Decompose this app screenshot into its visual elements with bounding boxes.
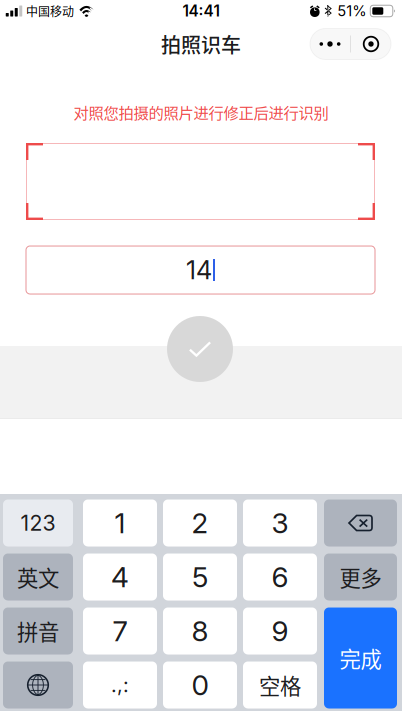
button[interactable]: 8 bbox=[163, 607, 237, 654]
staticText: 更多 bbox=[339, 562, 381, 592]
button[interactable]: 0 bbox=[163, 661, 237, 708]
staticText: 14:41 bbox=[182, 2, 219, 20]
staticText: 51% bbox=[337, 2, 366, 20]
staticText: 拍照识车 bbox=[161, 29, 241, 58]
button[interactable]: 6 bbox=[243, 553, 317, 600]
staticText: 对照您拍摄的照片进行修正后进行识别 bbox=[73, 101, 328, 123]
button[interactable]: 更多 bbox=[324, 553, 397, 600]
button[interactable]: Switch keyboard bbox=[3, 661, 73, 708]
staticText: 空格 bbox=[259, 670, 301, 700]
staticText: 5 bbox=[192, 560, 208, 594]
button[interactable]: Confirm bbox=[167, 316, 233, 382]
button[interactable]: 拼音 bbox=[3, 607, 73, 654]
button[interactable]: 5 bbox=[163, 553, 237, 600]
button[interactable]: 3 bbox=[243, 499, 317, 546]
button[interactable]: .,: bbox=[83, 661, 157, 708]
button[interactable]: 7 bbox=[83, 607, 157, 654]
button[interactable]: Close bbox=[351, 28, 391, 59]
staticText: 拼音 bbox=[17, 616, 59, 646]
staticText: 6 bbox=[271, 560, 288, 594]
staticText: 14 bbox=[186, 255, 212, 285]
button[interactable]: 空格 bbox=[243, 661, 317, 708]
button[interactable]: 4 bbox=[83, 553, 157, 600]
button[interactable]: 2 bbox=[163, 499, 237, 546]
button[interactable]: 1 bbox=[83, 499, 157, 546]
staticText: 4 bbox=[111, 560, 129, 594]
staticText: 123 bbox=[20, 510, 55, 536]
button[interactable]: 完成 bbox=[324, 607, 397, 708]
button[interactable]: 9 bbox=[243, 607, 317, 654]
staticText: 英文 bbox=[17, 562, 59, 592]
staticText: 7 bbox=[112, 614, 127, 648]
staticText: 9 bbox=[271, 614, 288, 648]
staticText: 2 bbox=[191, 506, 208, 540]
staticText: 8 bbox=[191, 614, 208, 648]
staticText: 完成 bbox=[339, 643, 381, 673]
staticText: 0 bbox=[191, 668, 208, 702]
button[interactable]: More bbox=[310, 28, 350, 59]
button[interactable]: Plate number field bbox=[26, 246, 375, 294]
button[interactable]: 123 bbox=[3, 499, 73, 546]
staticText: 3 bbox=[271, 506, 288, 540]
staticText: 1 bbox=[114, 506, 125, 540]
button[interactable]: 英文 bbox=[3, 553, 73, 600]
staticText: .,: bbox=[111, 673, 129, 697]
staticText: 中国移动 bbox=[26, 2, 74, 20]
button[interactable]: Delete bbox=[324, 499, 397, 546]
